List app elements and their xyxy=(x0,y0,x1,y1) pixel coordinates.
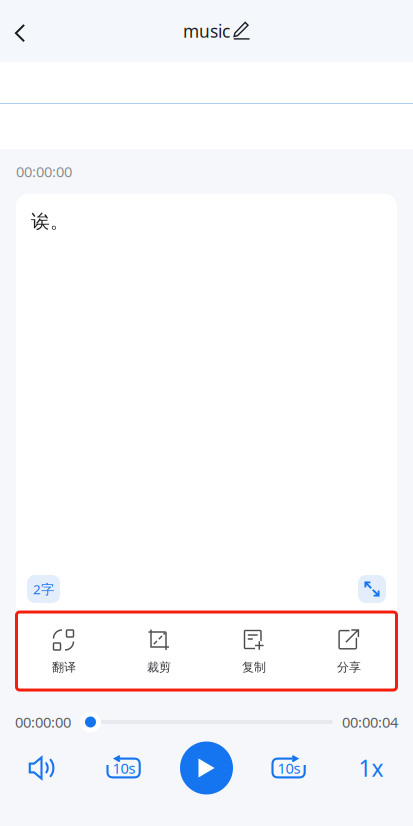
staticText: 00:00:04 xyxy=(342,712,398,732)
staticText: 复制 xyxy=(242,660,266,675)
staticText: 分享 xyxy=(337,660,361,675)
button[interactable]: 1x xyxy=(330,741,412,795)
staticText: 裁剪 xyxy=(147,660,171,675)
button[interactable]: 分享 xyxy=(301,612,396,690)
button[interactable]: Volume xyxy=(1,741,83,795)
button[interactable]: 复制 xyxy=(206,612,301,690)
staticText: 00:00:00 xyxy=(16,162,72,181)
staticText: 10s xyxy=(112,758,135,778)
staticText: 00:00:00 xyxy=(15,712,71,732)
button[interactable]: Expand xyxy=(358,575,386,603)
staticText: music xyxy=(183,19,230,42)
staticText: 诶。 xyxy=(31,210,69,233)
button[interactable]: 裁剪 xyxy=(111,612,206,690)
staticText: 翻译 xyxy=(52,660,76,675)
staticText: 10s xyxy=(277,758,300,778)
button[interactable]: Play xyxy=(165,741,248,795)
staticText: 2字 xyxy=(33,580,54,598)
button[interactable]: music xyxy=(144,8,268,54)
staticText: 1x xyxy=(358,753,383,783)
button[interactable]: Forward 10 seconds xyxy=(248,741,330,795)
button[interactable]: 翻译 xyxy=(16,612,111,690)
button[interactable]: Back 10 seconds xyxy=(83,741,165,795)
button[interactable]: Back xyxy=(0,1,40,61)
